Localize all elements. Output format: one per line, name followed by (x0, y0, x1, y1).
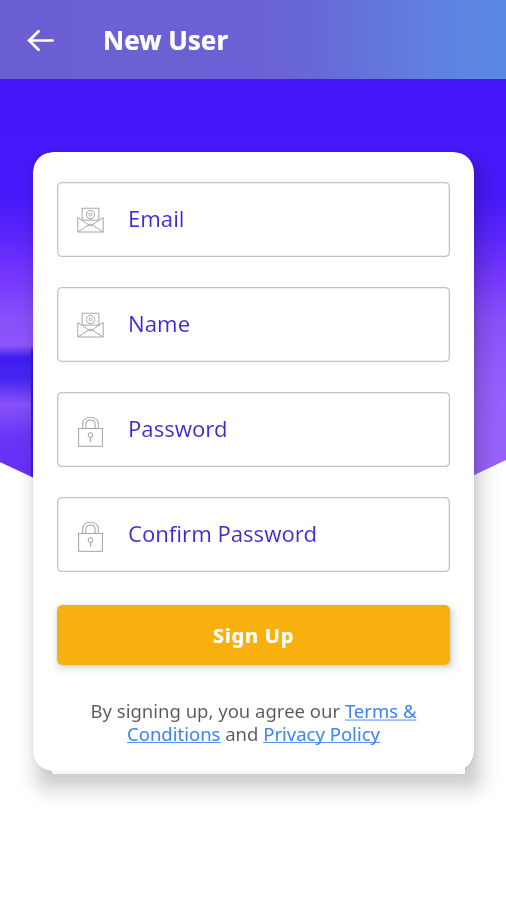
button[interactable]: Name (57, 287, 450, 362)
button[interactable]: Confirm Password (57, 497, 450, 572)
button[interactable]: Sign Up (57, 605, 450, 665)
staticText: Sign Up (213, 622, 295, 649)
staticText: Email (128, 203, 185, 233)
button[interactable]: Password (57, 392, 450, 467)
button[interactable]: Email (57, 182, 450, 257)
button[interactable]: Back (14, 14, 66, 66)
staticText: Confirm Password (128, 518, 317, 548)
staticText: New User (103, 22, 229, 57)
staticText: Password (128, 413, 228, 443)
staticText: Name (128, 308, 191, 338)
staticText: By signing up, you agree our Terms & Con… (57, 698, 450, 746)
